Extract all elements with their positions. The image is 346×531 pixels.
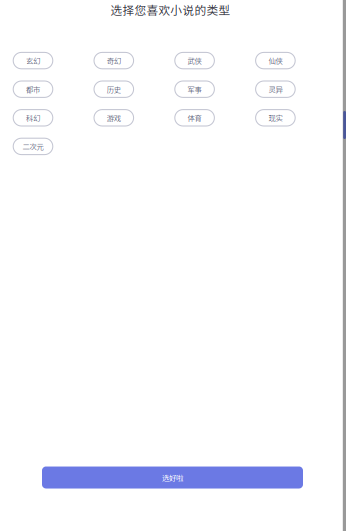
button[interactable]: 灵异 <box>256 81 295 97</box>
button[interactable]: 都市 <box>13 81 53 97</box>
staticText: 灵异 <box>268 84 282 94</box>
staticText: 游戏 <box>107 112 121 123</box>
button[interactable]: 玄幻 <box>13 52 53 69</box>
staticText: 历史 <box>107 84 121 94</box>
staticText: 军事 <box>188 84 202 94</box>
button[interactable]: 武侠 <box>175 52 214 69</box>
button[interactable]: 现实 <box>256 110 295 126</box>
staticText: 二次元 <box>22 141 43 152</box>
button[interactable]: 二次元 <box>13 138 53 155</box>
staticText: 体育 <box>188 112 202 123</box>
button[interactable]: 游戏 <box>94 110 134 126</box>
button[interactable]: 体育 <box>175 110 214 126</box>
staticText: 奇幻 <box>107 55 121 66</box>
button[interactable]: 科幻 <box>13 110 53 126</box>
button[interactable]: 军事 <box>175 81 214 97</box>
staticText: 现实 <box>268 112 282 123</box>
staticText: 玄幻 <box>26 55 40 66</box>
staticText: 选择您喜欢小说的类型 <box>110 1 230 18</box>
staticText: 选好啦 <box>162 472 183 483</box>
staticText: 武侠 <box>188 55 202 66</box>
button[interactable]: 选好啦 <box>42 466 303 488</box>
staticText: 都市 <box>26 84 40 94</box>
staticText: 仙侠 <box>268 55 282 66</box>
button[interactable]: 历史 <box>94 81 134 97</box>
button[interactable]: 仙侠 <box>256 52 295 69</box>
button[interactable]: 奇幻 <box>94 52 134 69</box>
staticText: 科幻 <box>26 112 40 123</box>
